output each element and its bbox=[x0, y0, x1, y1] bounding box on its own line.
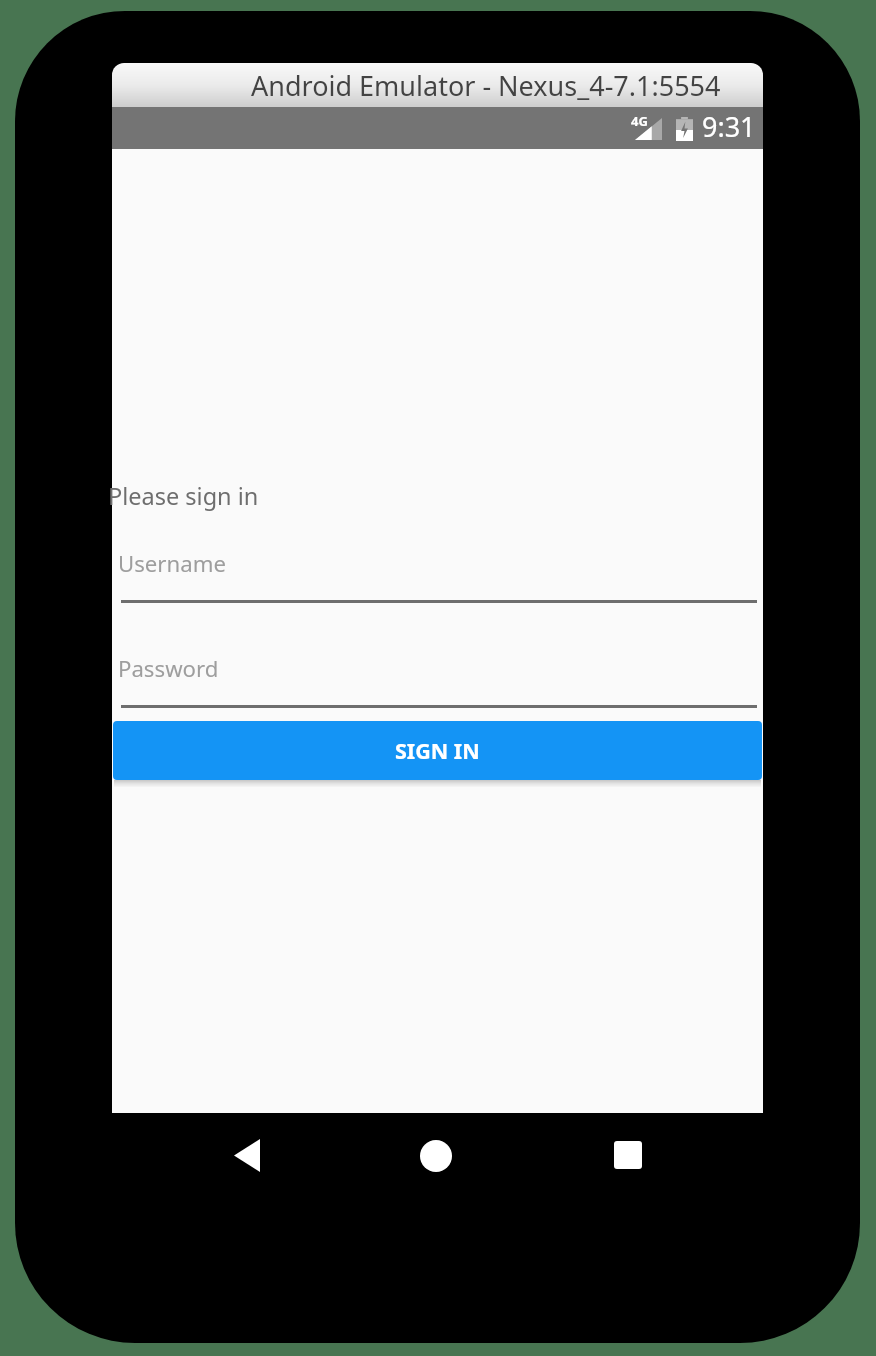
staticText: 9:31 bbox=[702, 108, 756, 145]
button[interactable] bbox=[234, 1139, 260, 1172]
button[interactable]: SIGN IN bbox=[113, 721, 762, 780]
staticText: Username bbox=[118, 548, 226, 578]
button[interactable]: Username bbox=[118, 548, 757, 600]
button[interactable] bbox=[614, 1141, 642, 1169]
button[interactable]: Password bbox=[118, 653, 757, 703]
staticText: Android Emulator - Nexus_4-7.1:5554 bbox=[251, 67, 721, 104]
staticText: Please sign in bbox=[108, 480, 259, 512]
button[interactable] bbox=[420, 1140, 452, 1172]
staticText: 4G bbox=[631, 112, 648, 130]
staticText: Password bbox=[118, 653, 219, 683]
staticText: SIGN IN bbox=[395, 736, 480, 765]
